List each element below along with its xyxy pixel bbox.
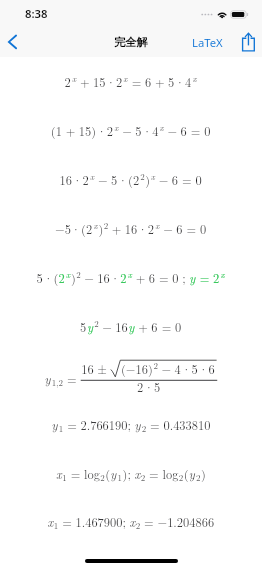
button[interactable]: Share bbox=[236, 26, 262, 58]
staticText: 完全解 bbox=[114, 35, 148, 49]
button[interactable]: Back bbox=[0, 26, 28, 58]
staticText: LaTeX bbox=[192, 35, 223, 50]
staticText: 8:38 bbox=[25, 6, 48, 21]
button[interactable]: LaTeX bbox=[192, 35, 223, 50]
